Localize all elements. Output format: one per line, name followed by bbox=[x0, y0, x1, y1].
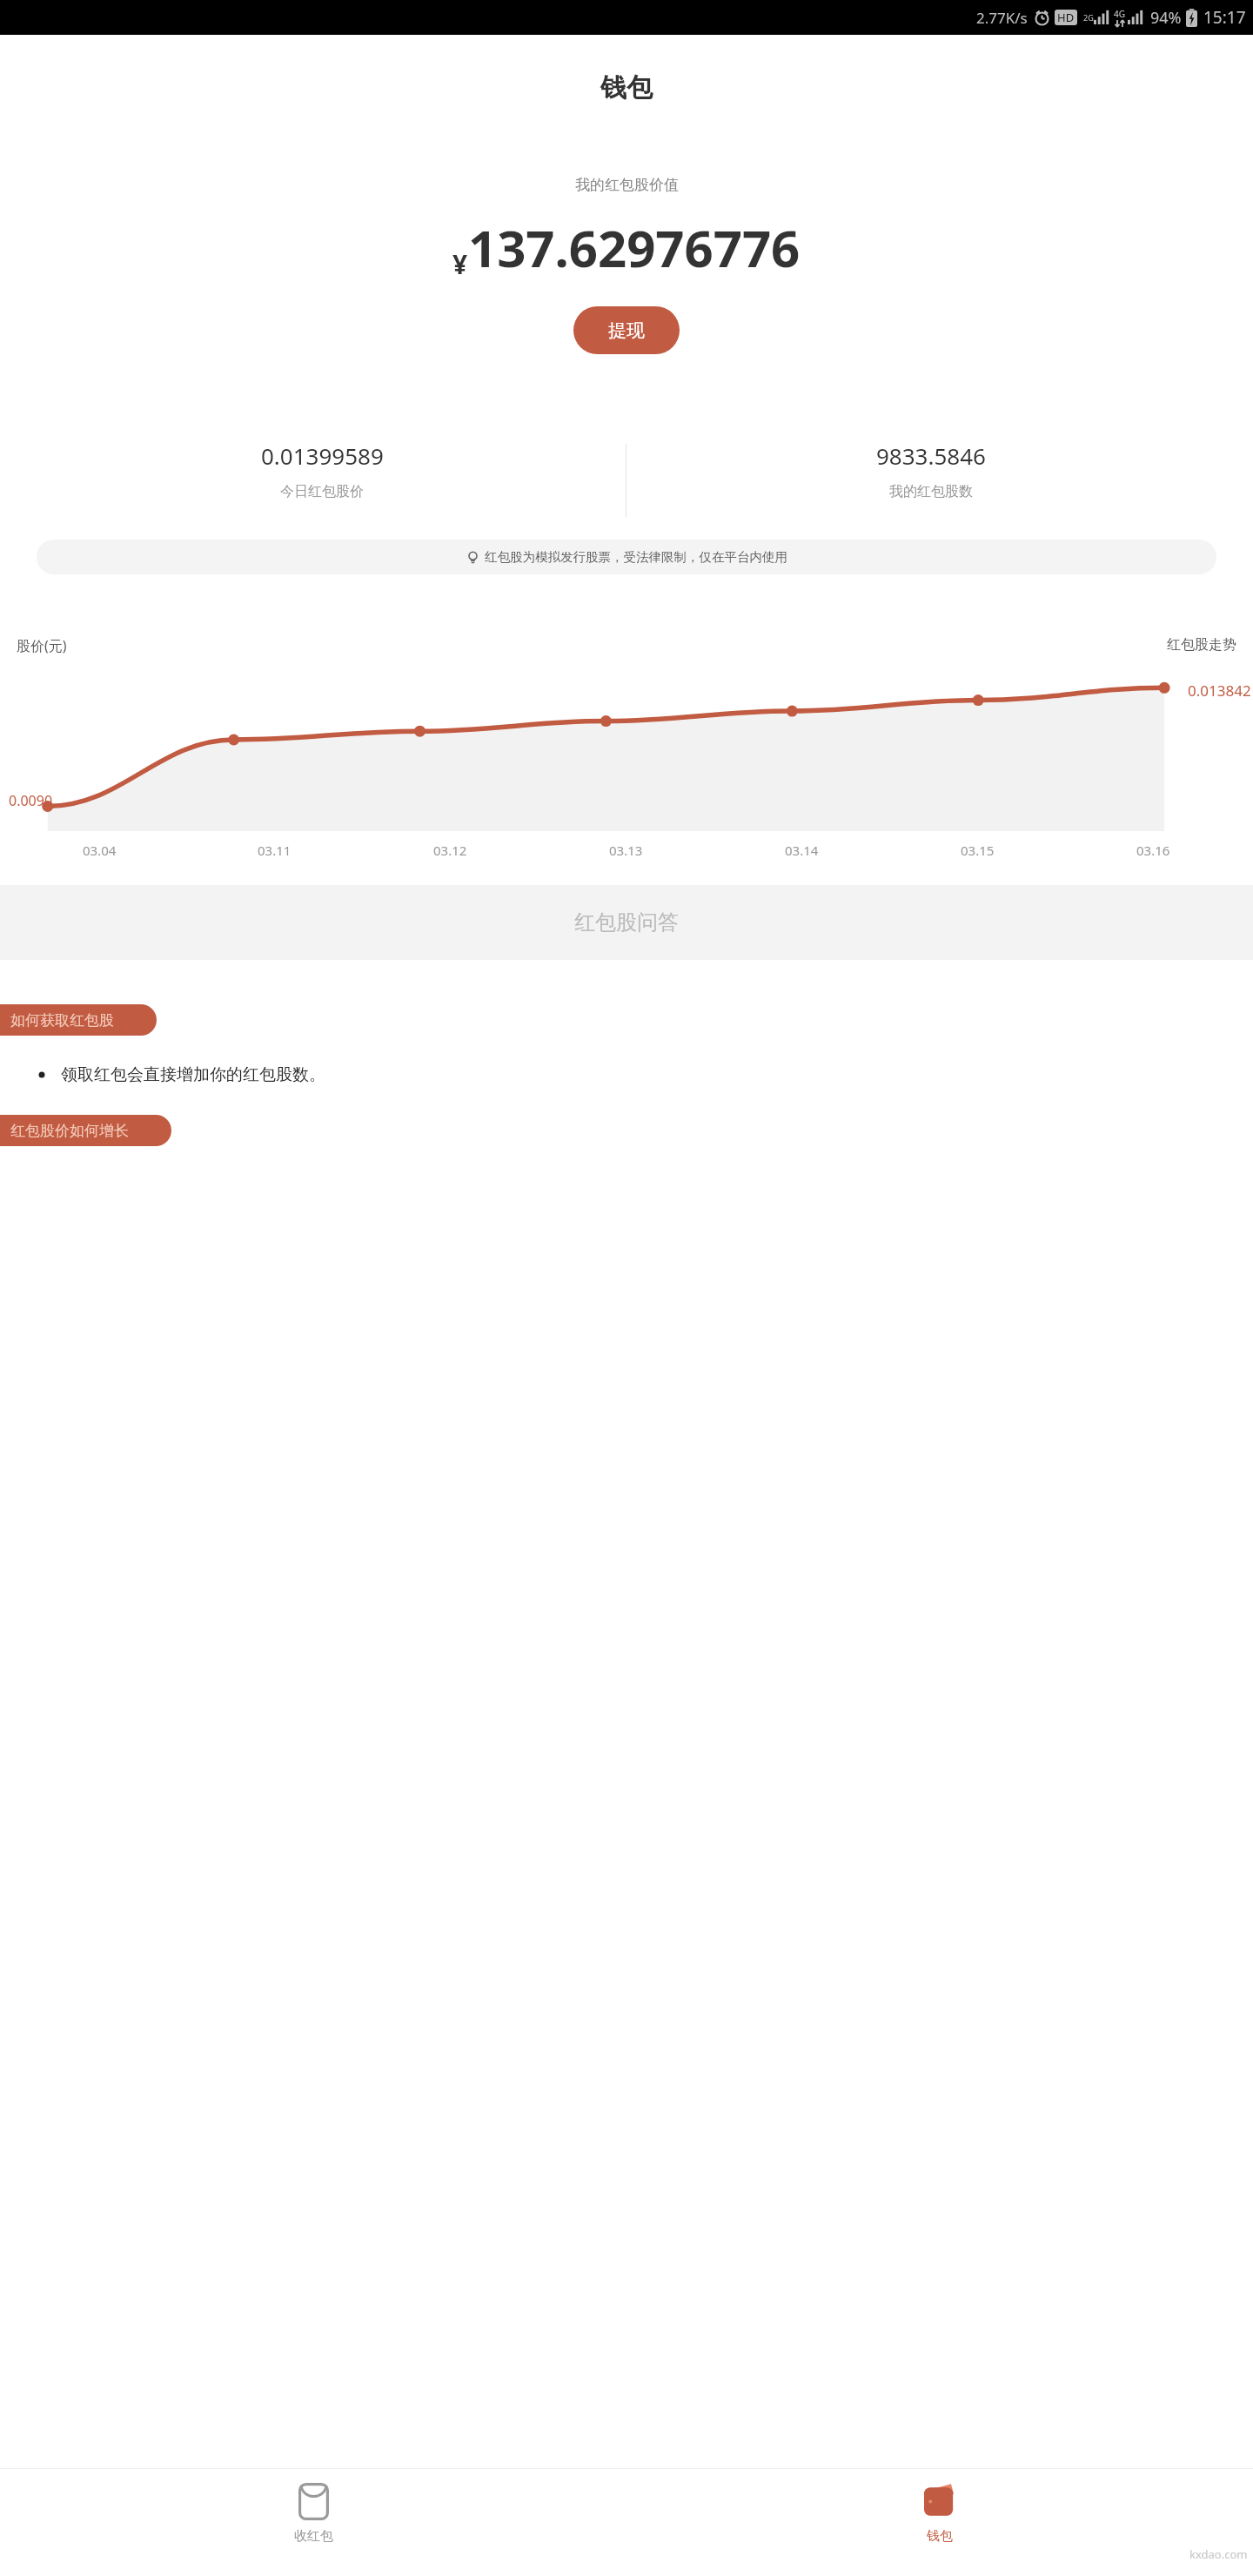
button[interactable]: 红包股价如何增长 bbox=[0, 1115, 171, 1146]
staticText: 03.16 bbox=[1136, 842, 1170, 859]
staticText: kxdao.com bbox=[1189, 2546, 1248, 2562]
button[interactable]: 如何获取红包股 bbox=[0, 1004, 157, 1036]
staticText: 红包股走势 bbox=[1167, 636, 1236, 654]
button[interactable]: 0.01399589 bbox=[18, 440, 626, 520]
button[interactable]: 提现 bbox=[573, 306, 680, 354]
staticText: 03.15 bbox=[961, 842, 995, 859]
button[interactable]: 0.01399589 bbox=[18, 418, 1235, 597]
staticText: 03.14 bbox=[785, 842, 819, 859]
button[interactable]: 领取红包会直接增加你的红包股数。 bbox=[38, 1064, 1253, 1085]
staticText: 红包股为模拟发行股票，受法律限制，仅在平台内使用 bbox=[485, 549, 787, 565]
staticText: 0.013842 bbox=[1188, 681, 1251, 701]
staticText: 4G bbox=[1114, 8, 1125, 20]
staticText: 钱包 bbox=[927, 2528, 953, 2545]
button[interactable]: 钱包 bbox=[626, 2468, 1253, 2576]
staticText: 我的红包股数 bbox=[889, 483, 973, 500]
staticText: 收红包 bbox=[294, 2528, 333, 2545]
button[interactable]: 9833.5846 bbox=[626, 440, 1235, 520]
staticText: 如何获取红包股 bbox=[10, 1011, 114, 1030]
staticText: 15:17 bbox=[1203, 6, 1246, 29]
staticText: 0.01399589 bbox=[261, 440, 384, 471]
staticText: 9833.5846 bbox=[876, 440, 986, 471]
staticText: 今日红包股价 bbox=[280, 483, 364, 500]
staticText: 股价(元) bbox=[17, 636, 67, 655]
staticText: HD bbox=[1057, 10, 1075, 25]
staticText: 03.11 bbox=[258, 842, 291, 859]
button[interactable]: 红包股为模拟发行股票，受法律限制，仅在平台内使用 bbox=[37, 540, 1216, 574]
staticText: 领取红包会直接增加你的红包股数。 bbox=[61, 1064, 325, 1085]
button[interactable]: 收红包 bbox=[0, 2468, 626, 2576]
staticText: 2.77K/s bbox=[976, 8, 1028, 28]
staticText: 137.62976776 bbox=[468, 213, 801, 282]
staticText: 03.04 bbox=[83, 842, 117, 859]
staticText: 我的红包股价值 bbox=[575, 176, 679, 194]
staticText: 提现 bbox=[608, 319, 645, 342]
staticText: 03.13 bbox=[609, 842, 643, 859]
staticText: 红包股价如何增长 bbox=[10, 1122, 129, 1140]
staticText: 0.0090 bbox=[9, 791, 53, 810]
staticText: 03.12 bbox=[433, 842, 467, 859]
staticText: ¥ bbox=[452, 246, 468, 282]
staticText: 94% bbox=[1150, 7, 1182, 29]
staticText: 红包股问答 bbox=[574, 909, 679, 936]
staticText: 2G bbox=[1083, 12, 1094, 23]
staticText: 钱包 bbox=[600, 71, 653, 104]
